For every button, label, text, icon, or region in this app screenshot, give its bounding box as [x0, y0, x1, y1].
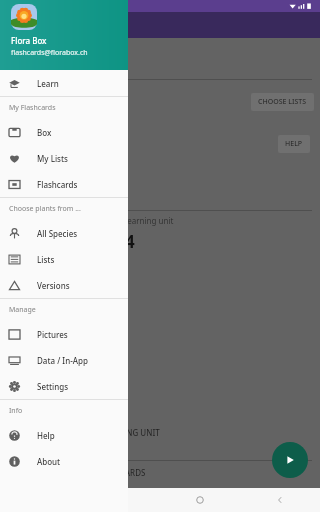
staticText: Learn — [37, 78, 59, 89]
button[interactable]: Start learning — [272, 442, 308, 478]
button[interactable]: Back — [240, 488, 320, 512]
staticText: Pictures — [37, 329, 68, 340]
staticText: Settings — [37, 381, 69, 392]
staticText: flashcards@florabox.ch — [11, 48, 88, 58]
staticText: MAX. NEW CARDS PER LEARNING UNIT — [12, 427, 160, 438]
staticText: MANUAL CHANGE OF FLASHCARDS — [12, 467, 146, 478]
button[interactable]: LEARNING WITH ... — [0, 46, 320, 75]
button[interactable]: About — [0, 448, 128, 474]
button[interactable]: Lists — [0, 246, 128, 272]
button[interactable]: CHOOSE LISTS — [251, 93, 314, 111]
button[interactable]: Learn — [0, 70, 128, 96]
staticText: HELP — [285, 139, 303, 149]
staticText: 10:33 — [5, 1, 23, 11]
button[interactable]: Pictures — [0, 321, 128, 347]
staticText: Number of cards for the next learning un… — [14, 215, 174, 226]
staticText: Flora Box — [11, 35, 47, 46]
button[interactable]: Flashcards — [0, 171, 128, 197]
button[interactable]: My Lists — [0, 145, 128, 171]
staticText: 4 — [125, 230, 135, 253]
button[interactable]: Box — [0, 119, 128, 145]
staticText: About — [37, 456, 61, 467]
staticText: the Lists (New) — [19, 64, 74, 75]
staticText: Cards — [12, 273, 34, 284]
staticText: My Flashcards — [9, 103, 56, 113]
staticText: Versions — [37, 280, 70, 291]
staticText: Lists — [37, 254, 55, 265]
button[interactable]: MAX. NEW CARDS PER LEARNING UNIT — [0, 425, 320, 454]
button[interactable]: HELP — [278, 135, 310, 153]
staticText: CHOOSE LISTS — [258, 97, 307, 107]
staticText: Help — [37, 430, 55, 441]
button[interactable]: Versions — [0, 272, 128, 298]
staticText: Box — [37, 127, 52, 138]
button[interactable]: Settings — [0, 373, 128, 399]
staticText: Manage — [9, 305, 36, 315]
staticText: Info — [9, 406, 23, 416]
staticText: Flashcards — [37, 179, 78, 190]
staticText: Data / In-App — [37, 355, 88, 366]
button[interactable]: Data / In-App — [0, 347, 128, 373]
staticText: LEARNING WITH ... — [12, 48, 84, 59]
button[interactable]: All Species — [0, 220, 128, 246]
staticText: Choose plants from ... — [9, 204, 81, 214]
button[interactable]: Home — [160, 488, 240, 512]
staticText: All Species — [37, 228, 78, 239]
button[interactable]: Help — [0, 422, 128, 448]
staticText: My Lists — [37, 153, 68, 164]
